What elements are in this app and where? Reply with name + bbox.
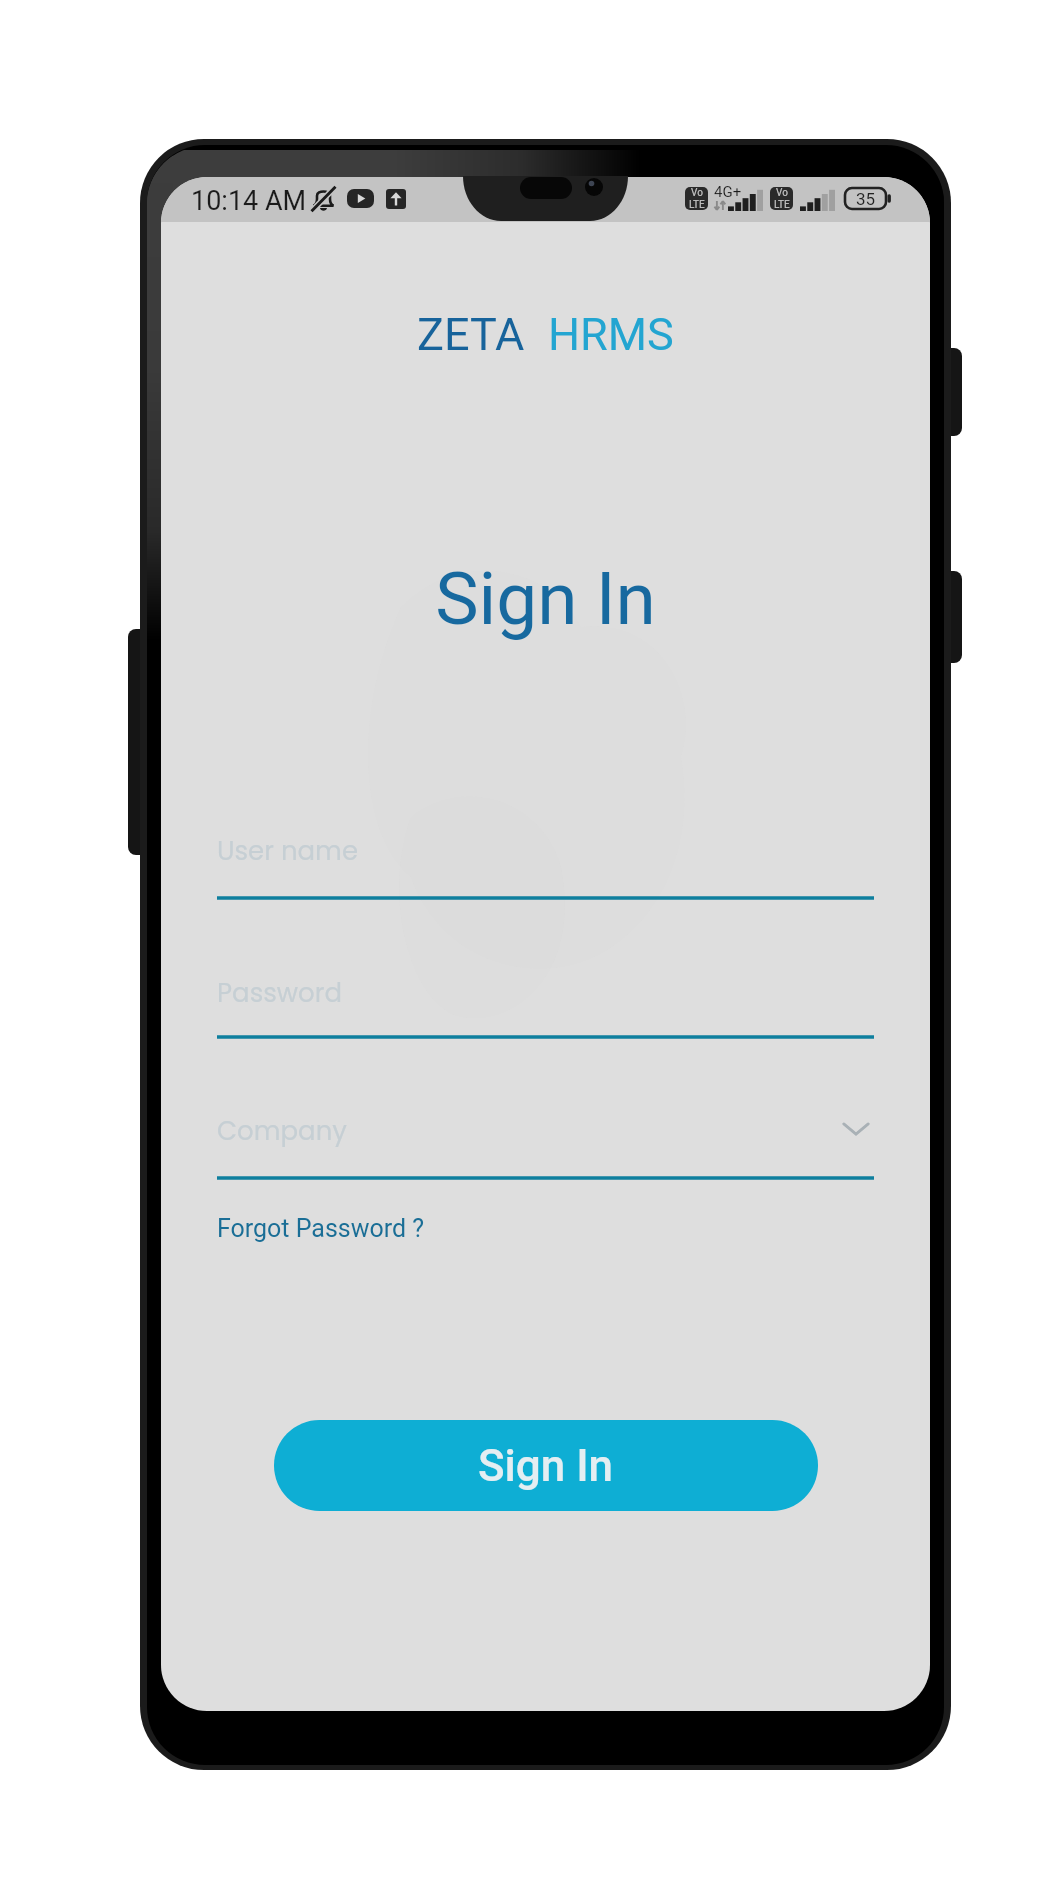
staticText: User name bbox=[217, 833, 358, 869]
other: Select company bbox=[838, 1111, 874, 1147]
other: Silent mode bbox=[311, 185, 336, 213]
staticText: Forgot Password ? bbox=[217, 1214, 425, 1243]
staticText: HRMS bbox=[548, 308, 674, 361]
staticText: Password bbox=[217, 975, 343, 1011]
button[interactable]: Password bbox=[161, 961, 930, 1057]
button[interactable]: Sign In bbox=[274, 1420, 818, 1511]
staticText: ZETA bbox=[417, 308, 525, 361]
other: YouTube bbox=[347, 189, 374, 208]
staticText: Vo bbox=[776, 187, 788, 199]
staticText: Vo bbox=[691, 187, 703, 199]
staticText: Company bbox=[217, 1113, 347, 1149]
staticText: LTE bbox=[689, 199, 705, 210]
staticText: LTE bbox=[774, 199, 790, 210]
staticText: 35 bbox=[856, 189, 876, 209]
staticText: 10:14 AM bbox=[191, 185, 307, 217]
button[interactable]: User name bbox=[161, 819, 930, 918]
button[interactable]: Company bbox=[161, 1099, 930, 1198]
other: Uploading bbox=[386, 189, 406, 209]
staticText: Sign In bbox=[161, 556, 930, 642]
staticText: 4G+ bbox=[714, 183, 742, 201]
button[interactable]: Forgot Password ? bbox=[207, 1206, 435, 1251]
staticText: Sign In bbox=[478, 1440, 614, 1492]
